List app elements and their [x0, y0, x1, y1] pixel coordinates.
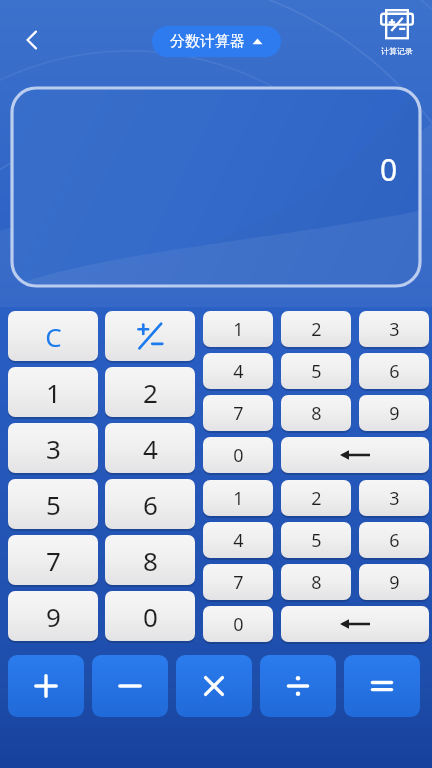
button[interactable]: Back	[10, 18, 54, 62]
staticText: 0	[233, 612, 244, 637]
button[interactable]: 2	[281, 311, 351, 347]
button[interactable]: 8	[105, 535, 195, 585]
staticText: 9	[389, 401, 400, 426]
staticText: 2	[311, 317, 322, 342]
button[interactable]: Backspace	[281, 606, 429, 642]
button[interactable]: 8	[281, 395, 351, 431]
button[interactable]: 6	[105, 479, 195, 529]
button[interactable]: 3	[359, 311, 429, 347]
button[interactable]: 0	[203, 437, 273, 473]
staticText: 2	[143, 375, 158, 410]
staticText: 6	[389, 528, 400, 553]
staticText: 7	[46, 543, 61, 578]
button[interactable]: 分数计算器	[152, 26, 281, 57]
button[interactable]: 9	[8, 591, 98, 641]
button[interactable]: 计算记录	[368, 8, 426, 66]
staticText: 9	[46, 599, 61, 634]
staticText: 4	[143, 431, 158, 466]
button[interactable]: 5	[281, 522, 351, 558]
button[interactable]: 9	[359, 395, 429, 431]
staticText: 3	[389, 317, 400, 342]
button[interactable]: Minus	[92, 655, 168, 717]
staticText: 计算记录	[381, 46, 413, 56]
staticText: 4	[233, 359, 244, 384]
staticText: 8	[143, 543, 158, 578]
staticText: 0	[380, 149, 398, 190]
staticText: 4	[233, 528, 244, 553]
staticText: 0	[233, 443, 244, 468]
button[interactable]: 7	[203, 395, 273, 431]
button[interactable]: 3	[8, 423, 98, 473]
staticText: 3	[46, 431, 61, 466]
button[interactable]: 4	[105, 423, 195, 473]
button[interactable]: 0	[105, 591, 195, 641]
staticText: C	[45, 319, 62, 354]
staticText: 6	[389, 359, 400, 384]
button[interactable]: 2	[105, 367, 195, 417]
staticText: 9	[389, 570, 400, 595]
button[interactable]: 1	[203, 480, 273, 516]
button[interactable]	[105, 311, 195, 361]
staticText: 分数计算器	[170, 32, 245, 51]
button[interactable]: 4	[203, 522, 273, 558]
button[interactable]: 5	[281, 353, 351, 389]
button[interactable]: 5	[8, 479, 98, 529]
button[interactable]: 4	[203, 353, 273, 389]
button[interactable]: C	[8, 311, 98, 361]
staticText: 7	[233, 401, 244, 426]
staticText: 5	[311, 359, 322, 384]
button[interactable]: 6	[359, 353, 429, 389]
button[interactable]: Equals	[344, 655, 420, 717]
button[interactable]: 2	[281, 480, 351, 516]
staticText: 6	[143, 487, 158, 522]
button[interactable]: Divide	[260, 655, 336, 717]
staticText: 8	[311, 401, 322, 426]
button[interactable]: 8	[281, 564, 351, 600]
staticText: 1	[233, 486, 244, 511]
staticText: 2	[311, 486, 322, 511]
staticText: 5	[311, 528, 322, 553]
staticText: 0	[143, 599, 158, 634]
staticText: 8	[311, 570, 322, 595]
staticText: 7	[233, 570, 244, 595]
staticText: 1	[233, 317, 244, 342]
button[interactable]: 0	[203, 606, 273, 642]
button[interactable]: 9	[359, 564, 429, 600]
staticText: 3	[389, 486, 400, 511]
button[interactable]: 6	[359, 522, 429, 558]
button[interactable]: 7	[8, 535, 98, 585]
button[interactable]: 3	[359, 480, 429, 516]
staticText: 1	[46, 375, 61, 410]
button[interactable]: Backspace	[281, 437, 429, 473]
button[interactable]: 7	[203, 564, 273, 600]
button[interactable]: Multiply	[176, 655, 252, 717]
button[interactable]: Plus	[8, 655, 84, 717]
staticText: 5	[46, 487, 61, 522]
button[interactable]: 1	[8, 367, 98, 417]
button[interactable]: 1	[203, 311, 273, 347]
